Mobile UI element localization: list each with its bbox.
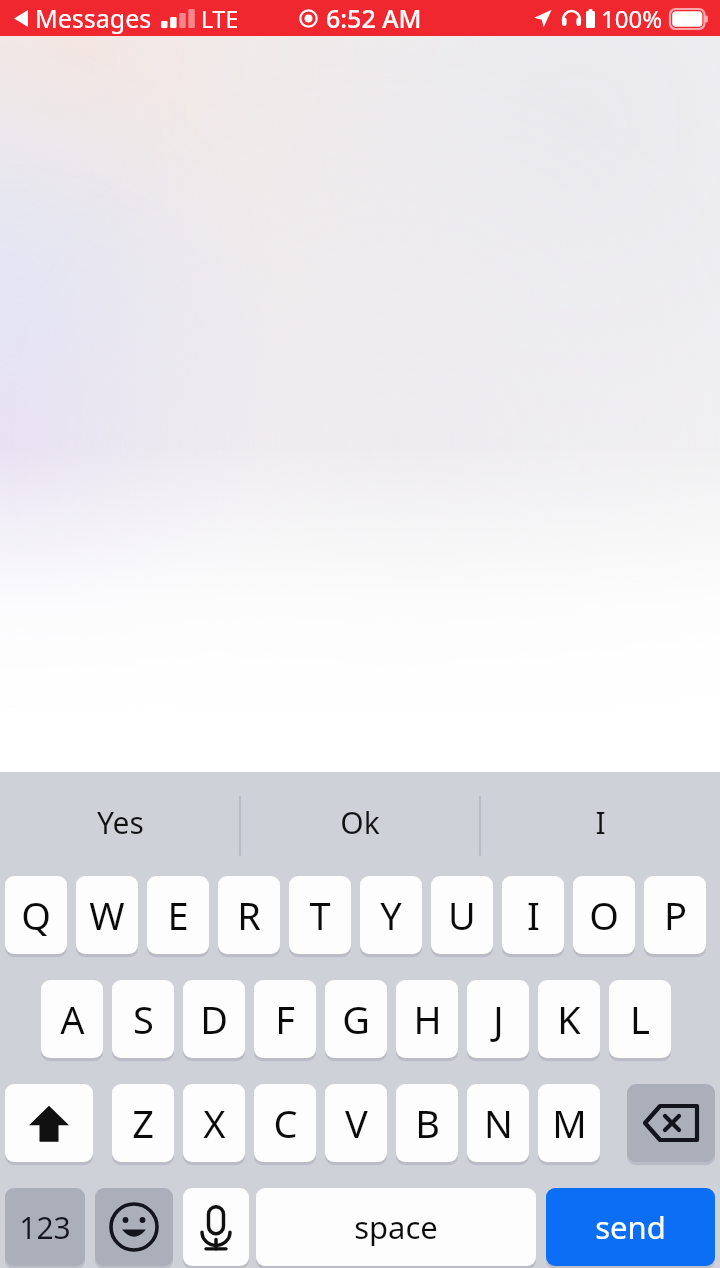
- staticText: 123: [19, 1207, 71, 1248]
- button[interactable]: space: [256, 1188, 536, 1266]
- button[interactable]: H: [396, 980, 458, 1058]
- staticText: W: [89, 889, 125, 941]
- staticText: E: [167, 889, 189, 941]
- staticText: P: [664, 889, 687, 941]
- button[interactable]: C: [254, 1084, 316, 1162]
- staticText: 100%: [601, 2, 663, 35]
- staticText: L: [630, 993, 650, 1045]
- button[interactable]: J: [467, 980, 529, 1058]
- button[interactable]: W: [76, 876, 138, 954]
- staticText: space: [354, 1206, 438, 1248]
- button[interactable]: G: [325, 980, 387, 1058]
- button[interactable]: Emoji: [95, 1188, 173, 1266]
- button[interactable]: Yes: [0, 772, 240, 872]
- button[interactable]: Backspace: [627, 1084, 715, 1162]
- button[interactable]: Back to Messages: [14, 1, 239, 35]
- button[interactable]: R: [218, 876, 280, 954]
- staticText: X: [203, 1097, 226, 1149]
- staticText: F: [275, 993, 295, 1045]
- staticText: Messages: [35, 1, 152, 35]
- staticText: I: [527, 889, 540, 941]
- staticText: Z: [132, 1097, 154, 1149]
- staticText: J: [493, 993, 504, 1045]
- button[interactable]: P: [644, 876, 706, 954]
- button[interactable]: Q: [5, 876, 67, 954]
- staticText: G: [342, 993, 370, 1045]
- button[interactable]: 123: [5, 1188, 85, 1266]
- staticText: T: [309, 889, 331, 941]
- button[interactable]: E: [147, 876, 209, 954]
- button[interactable]: L: [609, 980, 671, 1058]
- button[interactable]: O: [573, 876, 635, 954]
- button[interactable]: X: [183, 1084, 245, 1162]
- button[interactable]: Dictate: [183, 1188, 249, 1266]
- staticText: H: [413, 993, 442, 1045]
- staticText: Q: [21, 889, 51, 941]
- button[interactable]: S: [112, 980, 174, 1058]
- staticText: N: [484, 1097, 513, 1149]
- staticText: U: [448, 889, 476, 941]
- staticText: Y: [380, 889, 402, 941]
- staticText: send: [595, 1206, 666, 1248]
- button[interactable]: T: [289, 876, 351, 954]
- staticText: R: [237, 889, 261, 941]
- staticText: D: [200, 993, 228, 1045]
- button[interactable]: Ok: [240, 772, 480, 872]
- button[interactable]: B: [396, 1084, 458, 1162]
- button[interactable]: I: [502, 876, 564, 954]
- button[interactable]: U: [431, 876, 493, 954]
- button[interactable]: M: [538, 1084, 600, 1162]
- button[interactable]: I: [480, 772, 720, 872]
- button[interactable]: Y: [360, 876, 422, 954]
- button[interactable]: N: [467, 1084, 529, 1162]
- staticText: LTE: [201, 3, 239, 34]
- button[interactable]: Shift: [5, 1084, 93, 1162]
- button[interactable]: K: [538, 980, 600, 1058]
- staticText: S: [133, 993, 154, 1045]
- staticText: Yes: [97, 802, 144, 843]
- staticText: B: [415, 1097, 440, 1149]
- button[interactable]: Z: [112, 1084, 174, 1162]
- button[interactable]: send: [546, 1188, 715, 1266]
- staticText: I: [595, 802, 606, 843]
- staticText: M: [552, 1097, 587, 1149]
- button[interactable]: A: [41, 980, 103, 1058]
- staticText: Ok: [340, 802, 380, 843]
- staticText: C: [273, 1097, 298, 1149]
- staticText: O: [589, 889, 619, 941]
- button[interactable]: F: [254, 980, 316, 1058]
- button[interactable]: D: [183, 980, 245, 1058]
- staticText: 6:52 AM: [326, 1, 422, 35]
- button[interactable]: V: [325, 1084, 387, 1162]
- staticText: A: [60, 993, 85, 1045]
- staticText: V: [345, 1097, 368, 1149]
- staticText: K: [557, 993, 581, 1045]
